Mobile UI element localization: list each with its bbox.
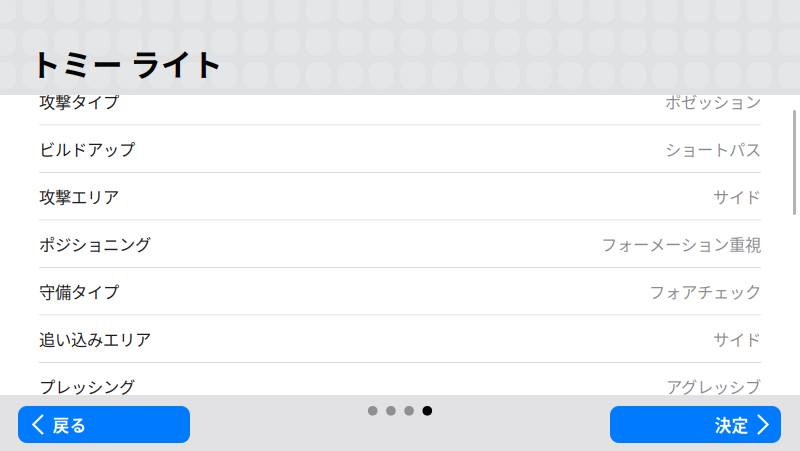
staticText: 攻撃タイプ xyxy=(39,89,119,113)
staticText: ポジショニング xyxy=(39,232,151,256)
staticText: 追い込みエリア xyxy=(39,327,151,351)
staticText: サイド xyxy=(713,184,761,208)
staticText: 標準 xyxy=(729,422,761,446)
button[interactable]: ポジショニング xyxy=(0,220,800,268)
button[interactable]: 決定 xyxy=(610,406,781,443)
staticText: フォアチェック xyxy=(649,279,761,303)
staticText: サイド xyxy=(713,327,761,351)
staticText: 攻撃エリア xyxy=(39,184,119,208)
button[interactable]: 戻る xyxy=(18,406,190,443)
button[interactable]: 攻撃タイプ xyxy=(0,78,800,125)
staticText: ポゼッション xyxy=(665,89,761,113)
staticText: 守備タイプ xyxy=(39,279,119,303)
staticText: アグレッシブ xyxy=(666,374,761,398)
staticText: ビルドアップ xyxy=(39,137,135,161)
button[interactable]: ビルドアップ xyxy=(0,125,800,173)
staticText: ショートパス xyxy=(665,137,761,161)
button[interactable]: 守備タイプ xyxy=(0,268,800,315)
staticText: プレッシング xyxy=(39,374,135,398)
button[interactable]: プレッシング xyxy=(0,363,800,410)
button[interactable]: 攻撃エリア xyxy=(0,173,800,220)
staticText: 決定 xyxy=(714,412,748,436)
button[interactable]: 追い込みエリア xyxy=(0,315,800,363)
staticText: フォーメーション重視 xyxy=(601,232,761,256)
button[interactable]: ディフェンスライン設定 xyxy=(0,410,800,451)
staticText: トミー ライト xyxy=(30,41,223,85)
staticText: 戻る xyxy=(52,412,86,436)
staticText: ディフェンスライン設定 xyxy=(39,422,214,446)
